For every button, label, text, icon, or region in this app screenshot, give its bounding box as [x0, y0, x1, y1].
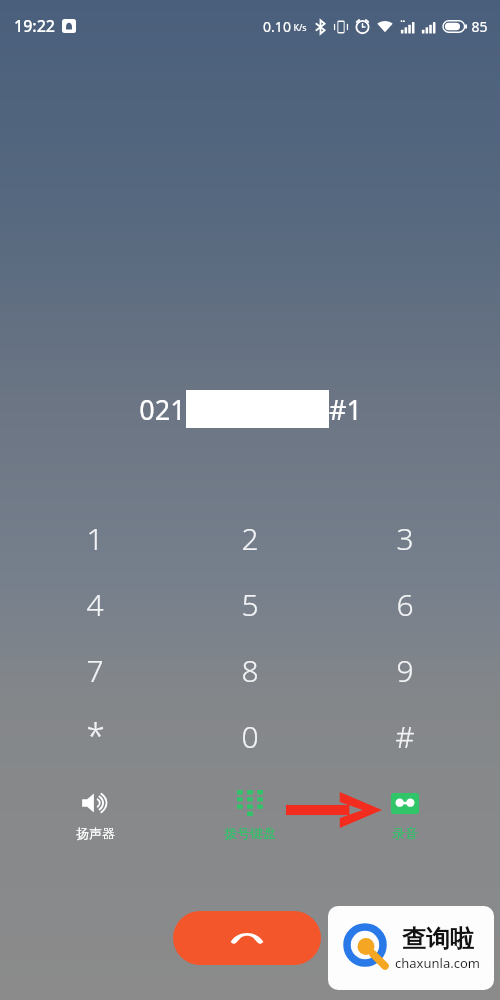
button[interactable]: 3: [345, 505, 465, 571]
button[interactable]: 7: [35, 637, 155, 703]
button[interactable]: Speaker: [35, 786, 155, 841]
staticText: 021: [139, 391, 186, 428]
staticText: 8: [241, 650, 259, 691]
button[interactable]: 5: [190, 571, 310, 637]
staticText: 4: [86, 584, 104, 625]
staticText: 9: [396, 650, 414, 691]
staticText: 录音: [392, 825, 418, 841]
button[interactable]: 4: [35, 571, 155, 637]
staticText: 扬声器: [76, 825, 115, 841]
button[interactable]: 2: [190, 505, 310, 571]
button[interactable]: #: [345, 703, 465, 769]
button[interactable]: *: [35, 703, 155, 769]
button[interactable]: 6: [345, 571, 465, 637]
staticText: 19:22: [14, 15, 55, 37]
button[interactable]: 0: [190, 703, 310, 769]
button[interactable]: 9: [345, 637, 465, 703]
staticText: 查询啦: [402, 924, 474, 954]
staticText: 0.10: [263, 17, 291, 36]
staticText: chaxunla.com: [395, 954, 480, 972]
staticText: 85: [471, 17, 488, 36]
button[interactable]: 1: [35, 505, 155, 571]
staticText: K/s: [293, 21, 307, 33]
staticText: 3: [396, 518, 414, 559]
staticText: 5: [241, 584, 259, 625]
button[interactable]: End call: [173, 911, 321, 965]
button[interactable]: Dialpad: [190, 786, 310, 841]
button[interactable]: Record: [345, 786, 465, 841]
staticText: *: [86, 713, 105, 759]
staticText: 1: [86, 518, 104, 559]
staticText: 7: [86, 650, 104, 691]
staticText: 2: [241, 518, 259, 559]
staticText: #: [395, 716, 415, 757]
button[interactable]: 8: [190, 637, 310, 703]
staticText: 0: [241, 716, 259, 757]
staticText: #1: [329, 391, 362, 428]
staticText: 6: [396, 584, 414, 625]
staticText: 拨号键盘: [224, 825, 276, 841]
